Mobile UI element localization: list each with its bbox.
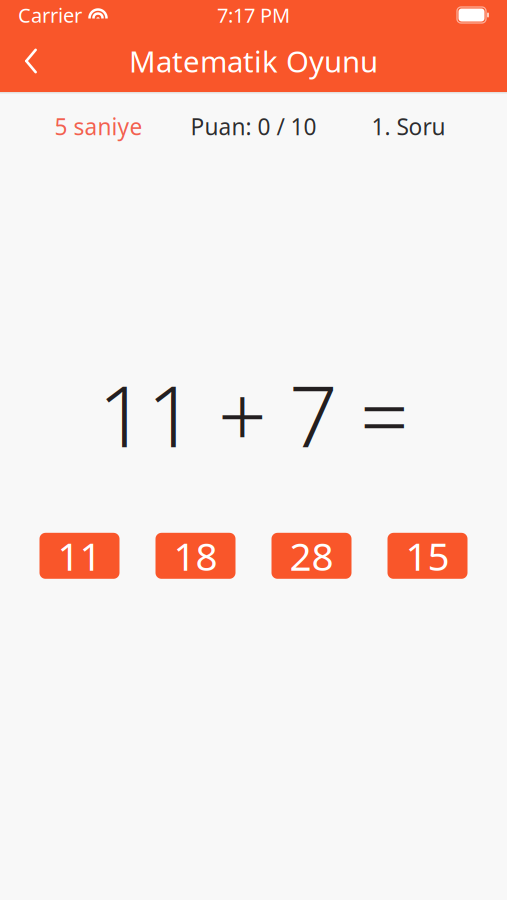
staticText: 28: [289, 530, 333, 581]
button[interactable]: 18: [155, 533, 235, 579]
button[interactable]: Back: [8, 36, 54, 86]
button[interactable]: 28: [271, 533, 351, 579]
button[interactable]: 11: [39, 533, 119, 579]
staticText: Puan: 0 / 10: [190, 111, 316, 141]
staticText: 7:17 PM: [217, 2, 290, 28]
staticText: 11: [57, 530, 101, 581]
staticText: 11 + 7 =: [98, 357, 409, 471]
staticText: Carrier: [18, 2, 82, 28]
staticText: 1. Soru: [371, 111, 445, 141]
staticText: Matematik Oyunu: [129, 41, 378, 80]
staticText: 5 saniye: [54, 111, 142, 141]
button[interactable]: 15: [387, 533, 467, 579]
staticText: 15: [405, 530, 449, 581]
staticText: 18: [173, 530, 217, 581]
